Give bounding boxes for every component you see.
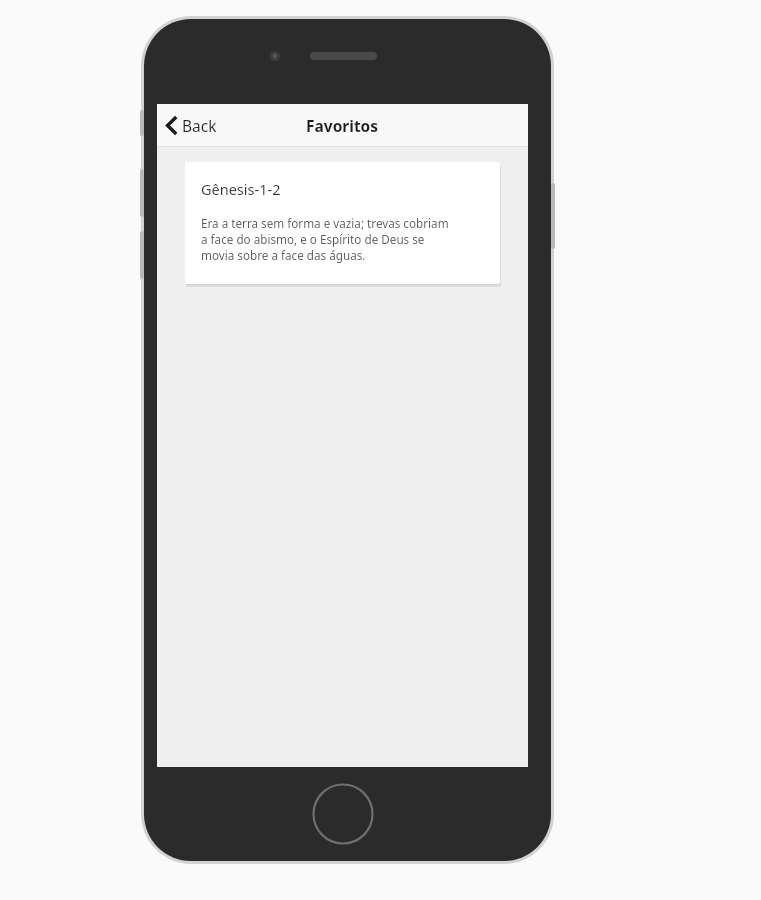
staticText: a face do abismo, e o Espírito de Deus s…: [201, 231, 425, 247]
button[interactable]: Back: [157, 104, 229, 147]
staticText: Gênesis-1-2: [201, 179, 281, 199]
staticText: movia sobre a face das águas.: [201, 247, 366, 263]
staticText: Era a terra sem forma e vazia; trevas co…: [201, 215, 449, 231]
staticText: Favoritos: [306, 115, 379, 136]
staticText: Back: [182, 115, 217, 136]
button[interactable]: Gênesis-1-2: [185, 162, 500, 284]
